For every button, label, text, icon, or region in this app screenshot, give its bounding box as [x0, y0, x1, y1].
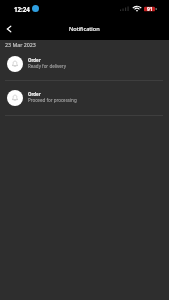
- button[interactable]: Order: [0, 46, 169, 81]
- button[interactable]: Order: [0, 80, 169, 115]
- button[interactable]: Back: [0, 20, 18, 38]
- staticText: 91: [147, 6, 153, 12]
- staticText: Order: [28, 91, 41, 97]
- staticText: Order: [28, 57, 41, 63]
- staticText: Notification: [69, 25, 100, 33]
- staticText: 12:24: [14, 5, 30, 13]
- staticText: Proceed for processing: [28, 97, 77, 103]
- staticText: Ready for delivery: [28, 63, 66, 69]
- staticText: 23 Mar 2023: [5, 41, 36, 48]
